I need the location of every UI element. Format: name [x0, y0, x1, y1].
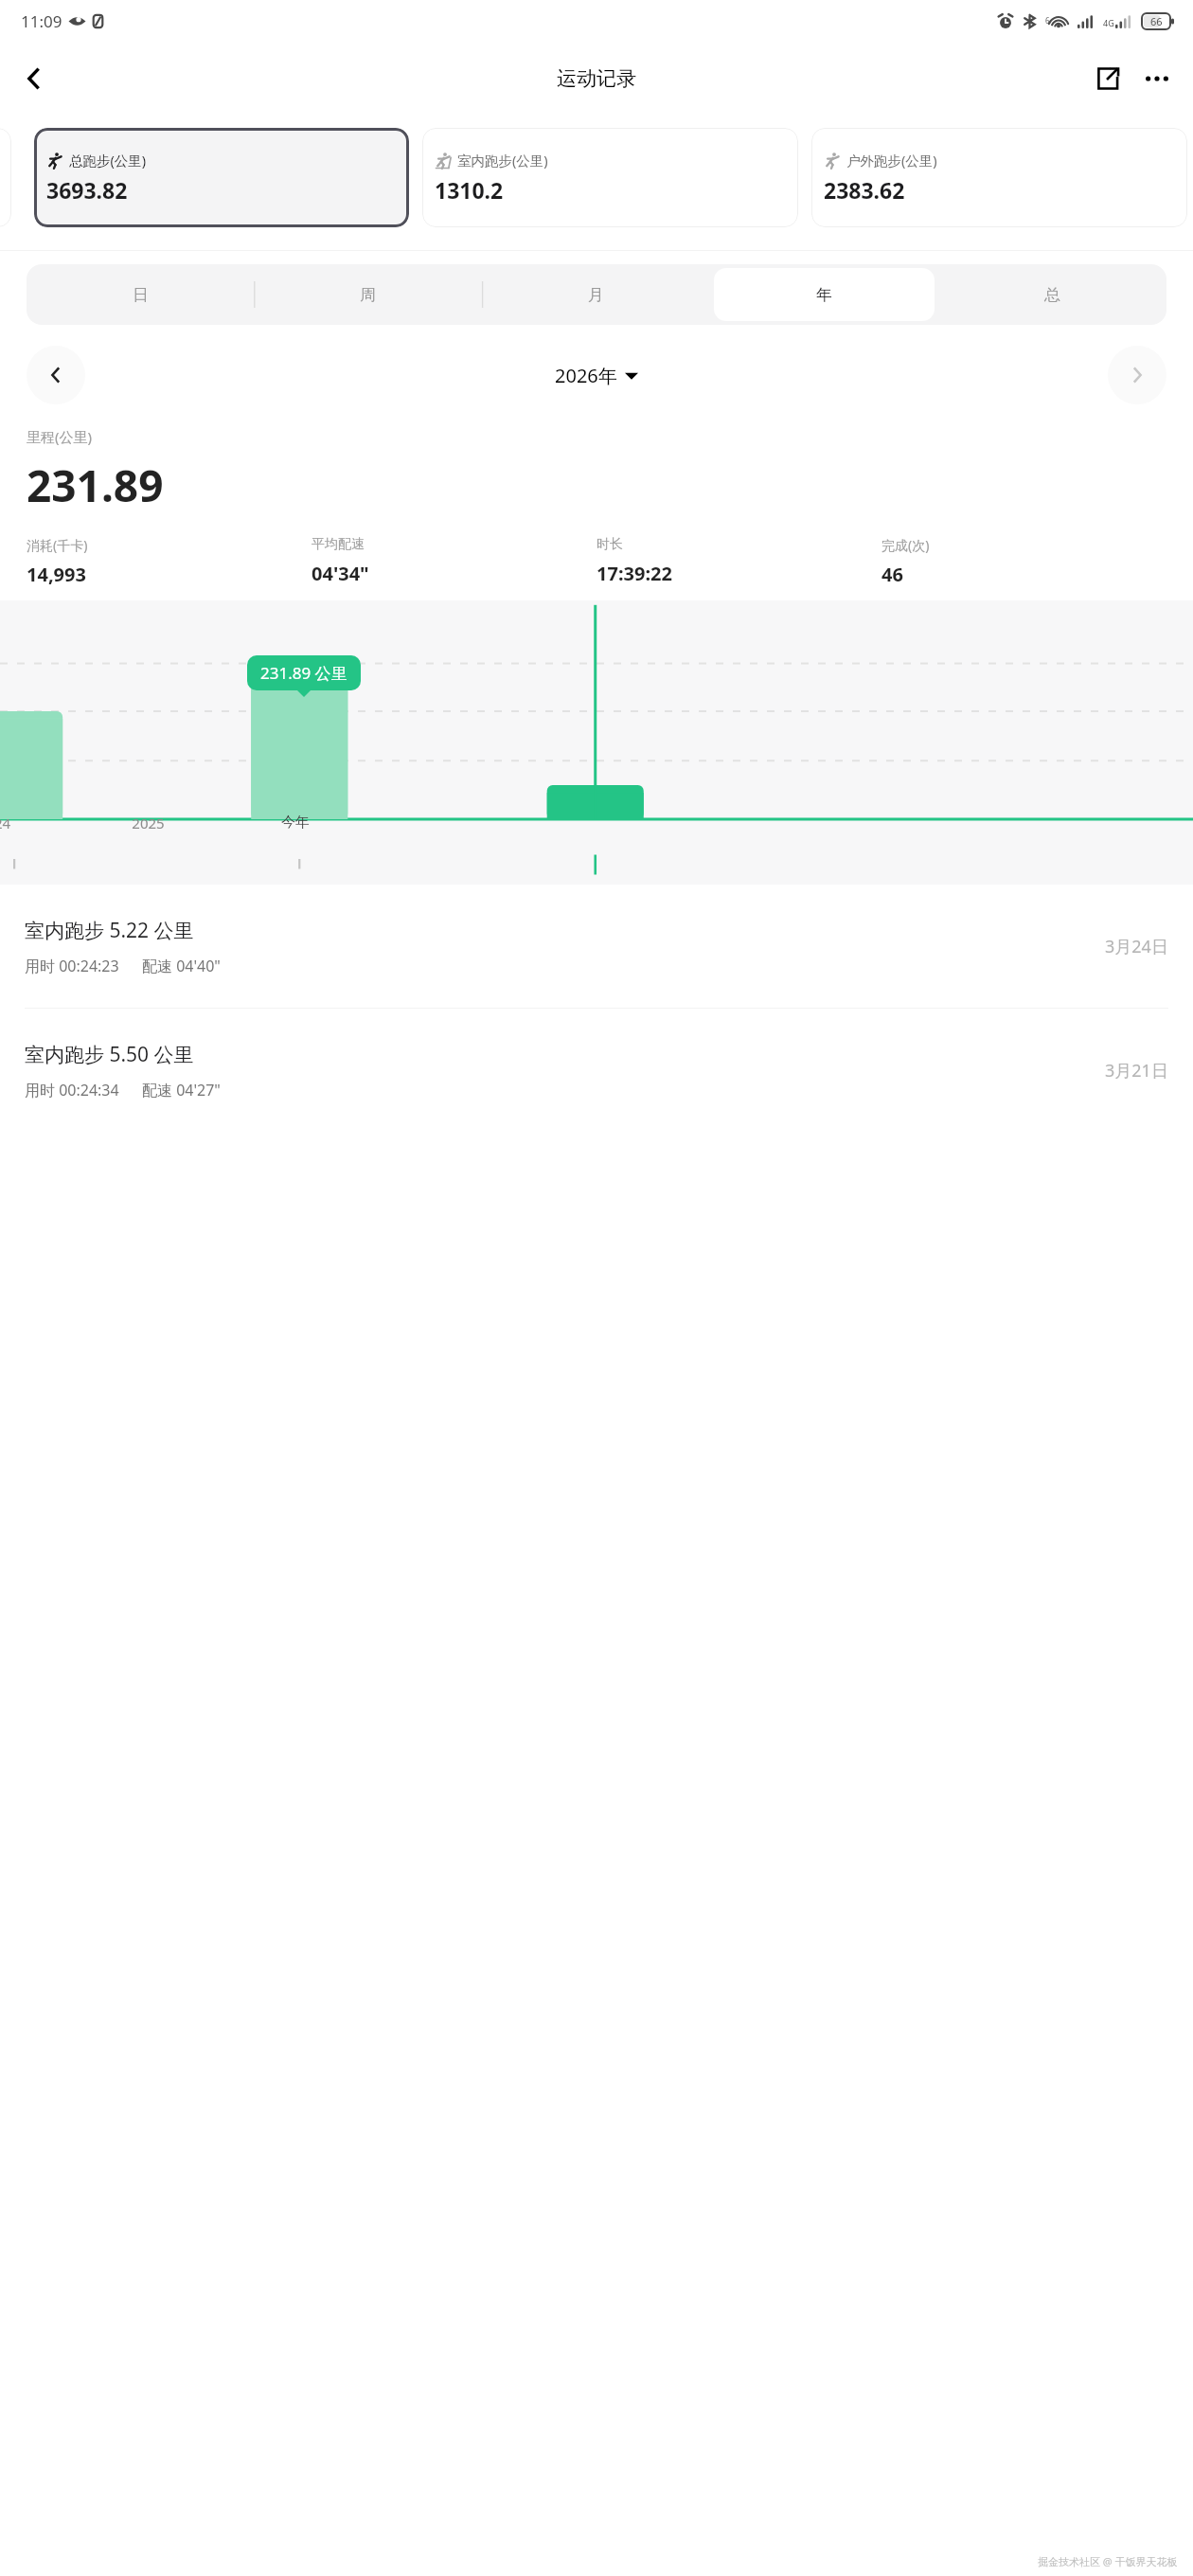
- staticText: 4G: [1103, 17, 1114, 28]
- button[interactable]: Share: [1083, 54, 1132, 103]
- staticText: 2026年: [555, 363, 617, 388]
- button[interactable]: 日: [30, 268, 250, 321]
- staticText: 11:09: [21, 10, 62, 32]
- button[interactable]: 室内跑步 5.50 公里: [0, 1009, 1193, 1132]
- staticText: 66: [1150, 14, 1163, 28]
- button[interactable]: 总: [942, 268, 1163, 321]
- staticText: 6: [1045, 15, 1050, 26]
- staticText: 用时 00:24:34: [25, 1080, 119, 1100]
- staticText: 日: [133, 285, 149, 305]
- staticText: 时长: [596, 536, 623, 553]
- button[interactable]: 室内跑步(公里): [422, 128, 798, 227]
- staticText: 3月21日: [1105, 1059, 1168, 1082]
- button[interactable]: 户外跑步(公里): [811, 128, 1187, 227]
- staticText: 3693.82: [46, 175, 128, 205]
- button[interactable]: 月: [486, 268, 706, 321]
- staticText: 04'34": [312, 561, 369, 586]
- staticText: 3月24日: [1105, 935, 1168, 958]
- staticText: 年: [816, 285, 832, 305]
- staticText: 户外跑步(公里): [846, 151, 937, 170]
- button[interactable]: More options: [1132, 54, 1182, 103]
- staticText: 46: [881, 562, 903, 587]
- button[interactable]: 室内跑步 5.22 公里: [0, 885, 1193, 1008]
- button[interactable]: Back: [8, 52, 61, 105]
- staticText: 24: [0, 814, 11, 832]
- staticText: 14,993: [27, 562, 86, 587]
- staticText: 周: [360, 285, 376, 305]
- staticText: 用时 00:24:23: [25, 956, 119, 976]
- staticText: 总跑步(公里): [69, 151, 147, 170]
- staticText: 里程(公里): [27, 427, 93, 446]
- staticText: 1310.2: [435, 175, 504, 205]
- staticText: 完成(次): [881, 536, 930, 554]
- button[interactable]: 2026年: [555, 363, 638, 388]
- staticText: 231.89 公里: [260, 662, 347, 684]
- staticText: 月: [588, 285, 604, 305]
- staticText: 2383.62: [824, 175, 905, 205]
- staticText: 掘金技术社区 @ 干饭界天花板: [1038, 2554, 1178, 2568]
- button[interactable]: 年: [714, 268, 935, 321]
- button[interactable]: Next year: [1108, 346, 1166, 404]
- staticText: 室内跑步(公里): [457, 151, 548, 170]
- button[interactable]: Previous year: [27, 346, 85, 404]
- staticText: 231.89: [27, 456, 164, 515]
- staticText: 室内跑步 5.22 公里: [25, 917, 194, 944]
- button[interactable]: 周: [258, 268, 478, 321]
- staticText: 配速 04'27": [142, 1080, 221, 1100]
- staticText: 总: [1044, 285, 1060, 305]
- staticText: 消耗(千卡): [27, 536, 88, 554]
- staticText: 平均配速: [312, 536, 365, 553]
- button[interactable]: 总跑步(公里): [34, 128, 409, 227]
- staticText: 室内跑步 5.50 公里: [25, 1041, 194, 1068]
- staticText: 2025: [132, 814, 165, 832]
- staticText: 运动记录: [557, 66, 636, 91]
- staticText: 17:39:22: [596, 561, 672, 586]
- staticText: 今年: [281, 814, 310, 832]
- staticText: 配速 04'40": [142, 956, 221, 976]
